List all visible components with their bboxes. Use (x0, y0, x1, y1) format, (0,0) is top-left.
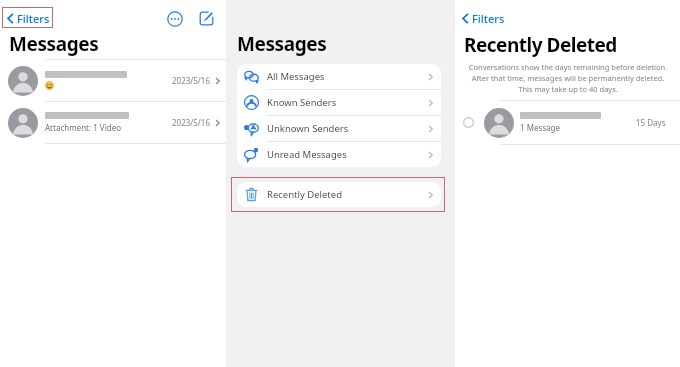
staticText: 2023/5/16 (172, 117, 210, 128)
staticText: Attachment: 1 Video (45, 122, 121, 133)
staticText: Filters (17, 11, 50, 26)
button[interactable]: All Messages (237, 64, 441, 89)
staticText: Recently Deleted (464, 32, 617, 58)
button[interactable]: 2023/5/16 (0, 60, 226, 101)
button[interactable]: Attachment: 1 Video (0, 102, 226, 143)
staticText: Known Senders (267, 96, 428, 109)
button[interactable]: Recently Deleted (237, 182, 441, 207)
staticText: Conversations show the days remaining be… (468, 62, 668, 94)
staticText: Messages (237, 31, 327, 57)
staticText: Filters (472, 11, 505, 26)
button[interactable]: Unknown Senders (237, 116, 441, 141)
button[interactable]: Known Senders (237, 90, 441, 115)
staticText: 1 Message (520, 122, 561, 133)
staticText: Recently Deleted (267, 188, 428, 201)
button[interactable]: Select conversation (455, 101, 680, 144)
button[interactable]: More options (165, 9, 184, 28)
staticText: All Messages (267, 70, 428, 83)
staticText: Unread Messages (267, 148, 428, 161)
button[interactable]: Compose new message (197, 9, 216, 28)
staticText: 15 Days (636, 117, 666, 128)
staticText: Unknown Senders (267, 122, 428, 135)
button[interactable]: Unread Messages (237, 142, 441, 167)
button[interactable]: Filters (460, 10, 507, 26)
button[interactable]: Filters (5, 10, 52, 26)
staticText: Messages (9, 31, 99, 57)
staticText: 2023/5/16 (172, 75, 210, 86)
other: Select conversation (463, 117, 474, 128)
